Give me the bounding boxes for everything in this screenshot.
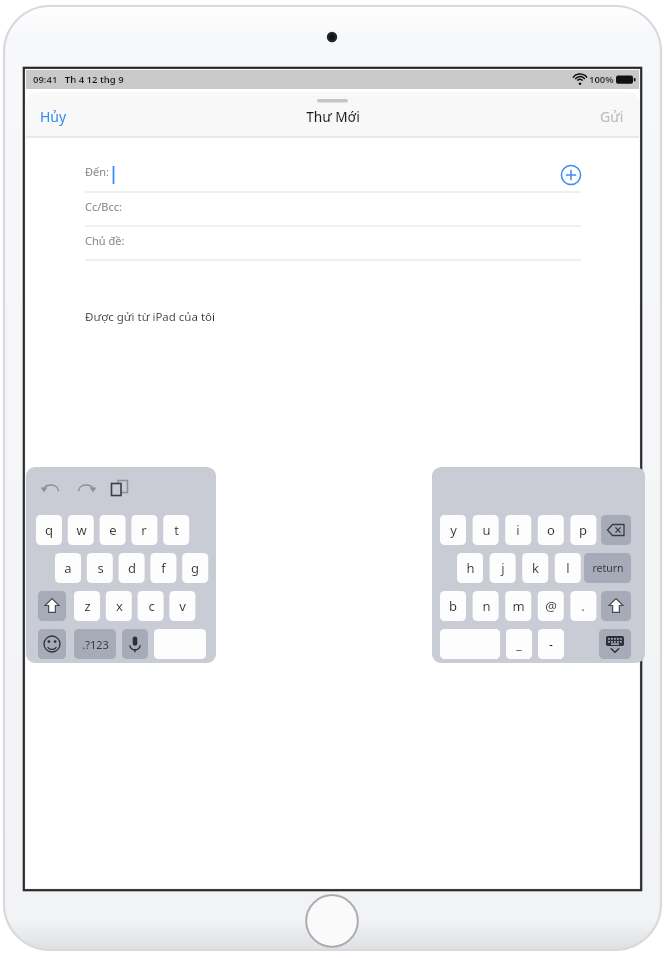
staticText: .?123 <box>82 637 109 652</box>
button[interactable]: l <box>555 553 581 583</box>
staticText: . <box>581 597 585 615</box>
staticText: Được gửi từ iPad của tôi <box>85 309 215 325</box>
button[interactable]: e <box>100 515 126 545</box>
staticText: e <box>109 521 117 539</box>
staticText: z <box>84 597 91 615</box>
button[interactable]: Đến: <box>85 156 581 186</box>
staticText: m <box>512 597 525 615</box>
button[interactable]: Hide keyboard <box>599 629 631 659</box>
button[interactable]: x <box>106 591 132 621</box>
button[interactable]: f <box>150 553 176 583</box>
staticText: return <box>592 561 624 575</box>
staticText: w <box>76 521 87 539</box>
button[interactable]: z <box>74 591 100 621</box>
button[interactable]: a <box>55 553 81 583</box>
staticText: q <box>45 521 53 539</box>
staticText: d <box>128 559 136 577</box>
button[interactable]: Hủy <box>28 100 98 132</box>
button[interactable]: Gửi <box>576 100 634 132</box>
button[interactable]: Shift <box>601 591 631 621</box>
staticText: 09:41 Th 4 12 thg 9 <box>33 73 124 86</box>
button[interactable]: q <box>36 515 62 545</box>
staticText: h <box>466 559 475 577</box>
button[interactable]: g <box>182 553 208 583</box>
button[interactable]: Undo <box>38 475 64 501</box>
button[interactable]: r <box>131 515 157 545</box>
staticText: x <box>116 597 123 615</box>
button[interactable]: Dictate <box>122 629 148 659</box>
staticText: y <box>450 521 457 539</box>
staticText: Thư Mới <box>306 108 360 126</box>
button[interactable]: b <box>440 591 466 621</box>
staticText: s <box>97 559 104 577</box>
button[interactable]: k <box>522 553 548 583</box>
button[interactable]: d <box>119 553 145 583</box>
button[interactable]: Emoji <box>38 629 66 659</box>
button[interactable]: Chủ đề: <box>85 225 581 255</box>
button[interactable]: i <box>505 515 531 545</box>
button[interactable]: . <box>570 591 596 621</box>
button[interactable]: y <box>440 515 466 545</box>
button[interactable]: .?123 <box>74 629 116 659</box>
staticText: Đến: <box>85 164 109 179</box>
staticText: b <box>449 597 457 615</box>
staticText: 100% <box>589 73 614 86</box>
button[interactable]: c <box>138 591 164 621</box>
staticText: a <box>64 559 72 577</box>
button[interactable]: Redo <box>73 475 99 501</box>
button[interactable]: _ <box>506 629 532 659</box>
button[interactable]: p <box>570 515 596 545</box>
staticText: Hủy <box>40 107 67 126</box>
staticText: c <box>148 597 155 615</box>
button[interactable]: o <box>538 515 564 545</box>
staticText: Gửi <box>600 107 624 126</box>
staticText: n <box>482 597 491 615</box>
staticText: k <box>532 559 539 577</box>
staticText: _ <box>516 636 522 652</box>
staticText: r <box>141 521 147 539</box>
button[interactable]: Add contact <box>556 160 586 190</box>
button[interactable]: j <box>490 553 516 583</box>
staticText: i <box>516 521 520 539</box>
staticText: - <box>549 636 553 652</box>
staticText: p <box>579 521 587 539</box>
button[interactable]: Cc/Bcc: <box>85 191 581 221</box>
button[interactable]: return <box>584 553 631 583</box>
button[interactable]: v <box>169 591 195 621</box>
button[interactable]: s <box>87 553 113 583</box>
button[interactable]: - <box>538 629 564 659</box>
button[interactable]: w <box>68 515 94 545</box>
staticText: g <box>191 559 199 577</box>
button[interactable]: Shift <box>38 591 66 621</box>
staticText: f <box>161 559 166 577</box>
button[interactable]: Delete <box>601 515 631 545</box>
button[interactable]: Space <box>440 629 500 659</box>
button[interactable]: n <box>473 591 499 621</box>
staticText: u <box>482 521 491 539</box>
button[interactable]: t <box>163 515 189 545</box>
button[interactable]: h <box>457 553 483 583</box>
staticText: @ <box>545 597 557 615</box>
button[interactable]: m <box>505 591 531 621</box>
button[interactable]: Paste <box>106 475 132 501</box>
button[interactable]: @ <box>538 591 564 621</box>
staticText: Chủ đề: <box>85 233 125 248</box>
staticText: t <box>174 521 179 539</box>
staticText: v <box>179 597 186 615</box>
button[interactable]: Space <box>154 629 206 659</box>
button[interactable]: u <box>473 515 499 545</box>
staticText: o <box>547 521 555 539</box>
staticText: Cc/Bcc: <box>85 199 122 214</box>
staticText: l <box>566 559 570 577</box>
staticText: j <box>501 559 505 577</box>
